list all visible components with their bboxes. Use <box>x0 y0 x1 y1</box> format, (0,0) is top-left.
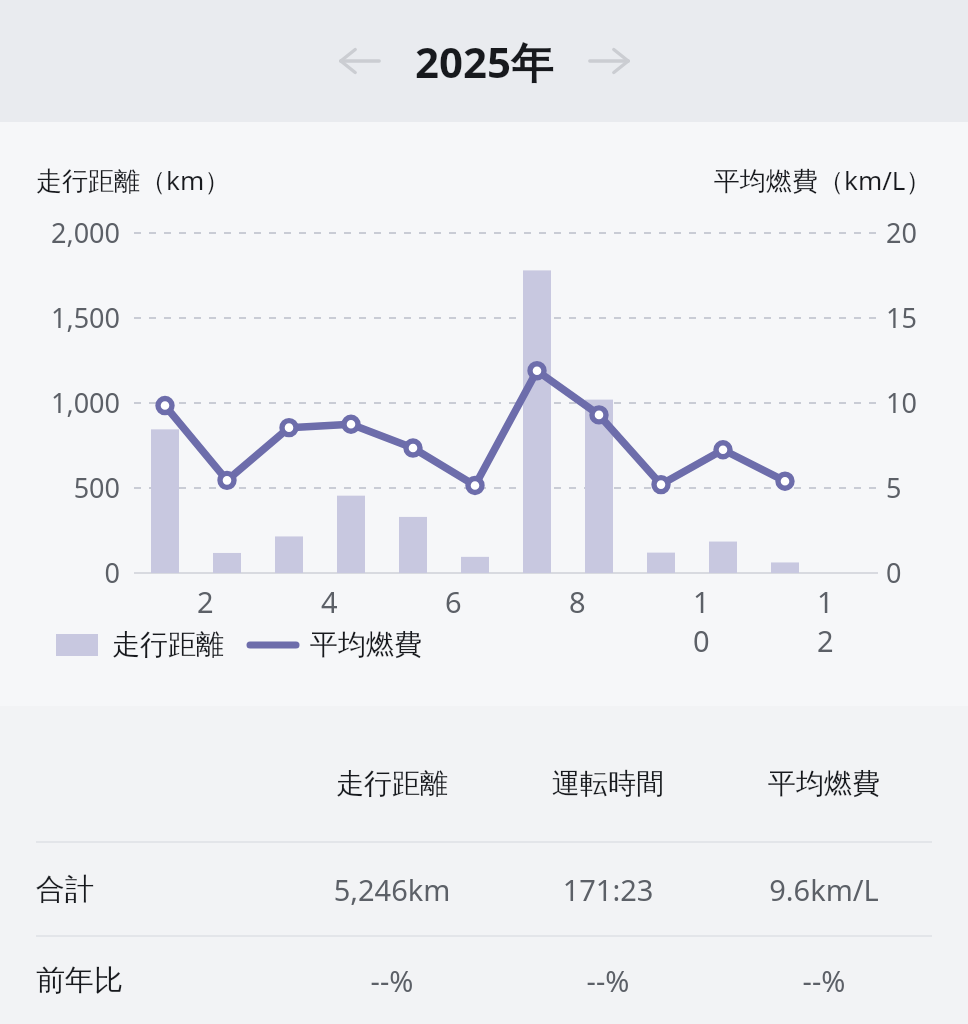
staticText: 走行距離 <box>284 766 500 801</box>
staticText: 1,500 <box>0 299 120 336</box>
staticText: 平均燃費 <box>716 766 932 801</box>
staticText: 1,000 <box>0 384 120 421</box>
staticText: 合計 <box>36 871 94 908</box>
staticText: --% <box>716 961 932 1000</box>
staticText: 171:23 <box>500 870 716 909</box>
staticText: --% <box>284 961 500 1000</box>
staticText: 500 <box>0 469 120 506</box>
staticText: 9.6km/L <box>716 870 932 909</box>
staticText: 2025年 <box>415 33 554 90</box>
staticText: 0 <box>886 554 968 591</box>
staticText: 平均燃費（km/L） <box>714 162 932 198</box>
staticText: 2,000 <box>0 214 120 251</box>
button[interactable]: Next year <box>572 24 646 98</box>
staticText: --% <box>500 961 716 1000</box>
staticText: 5,246km <box>284 870 500 909</box>
button[interactable]: 合計 <box>0 843 968 935</box>
button[interactable]: Previous year <box>323 24 397 98</box>
staticText: 10 <box>886 384 968 421</box>
staticText: 走行距離 <box>112 627 224 662</box>
staticText: 20 <box>886 214 968 251</box>
staticText: 平均燃費 <box>310 627 422 662</box>
staticText: 0 <box>0 554 120 591</box>
button[interactable]: 前年比 <box>0 937 968 1024</box>
staticText: 5 <box>886 469 968 506</box>
staticText: 走行距離（km） <box>36 162 231 198</box>
staticText: 運転時間 <box>500 766 716 801</box>
staticText: 前年比 <box>36 962 123 999</box>
staticText: 15 <box>886 299 968 336</box>
